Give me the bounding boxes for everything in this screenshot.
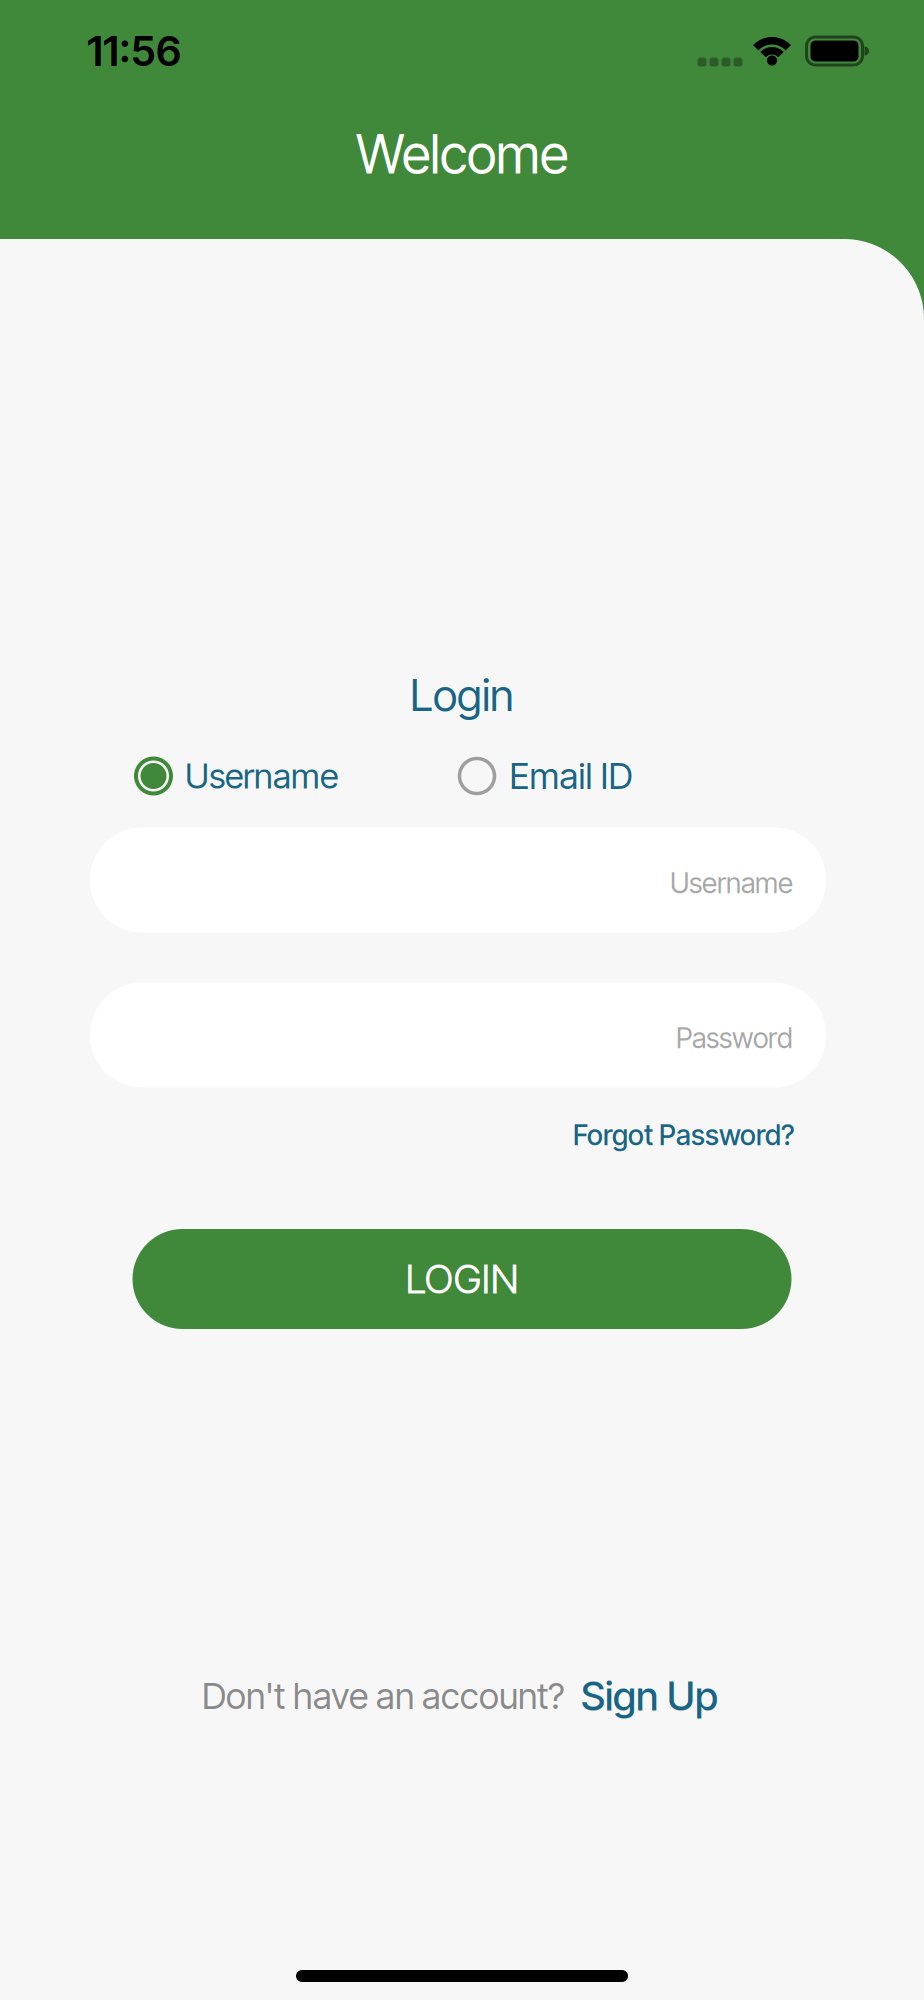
button[interactable]: Forgot Password? [573,1118,795,1151]
button[interactable]: Password [90,982,826,1087]
staticText: Don't have an account? [202,1675,565,1717]
button[interactable]: Username [90,827,826,932]
staticText: Email ID [509,755,632,797]
staticText: Forgot Password? [573,1118,795,1151]
staticText: Username [670,866,793,899]
staticText: Password [676,1021,793,1054]
staticText: Login [410,669,514,721]
staticText: Welcome [356,122,568,185]
staticText: LOGIN [405,1255,518,1303]
button[interactable]: Email ID [457,755,632,797]
button[interactable]: Username [134,756,338,796]
button[interactable]: LOGIN [132,1229,791,1329]
staticText: Sign Up [581,1672,718,1720]
staticText: Username [185,756,338,796]
button[interactable]: Sign Up [581,1672,718,1720]
staticText: 11:56 [87,27,181,75]
